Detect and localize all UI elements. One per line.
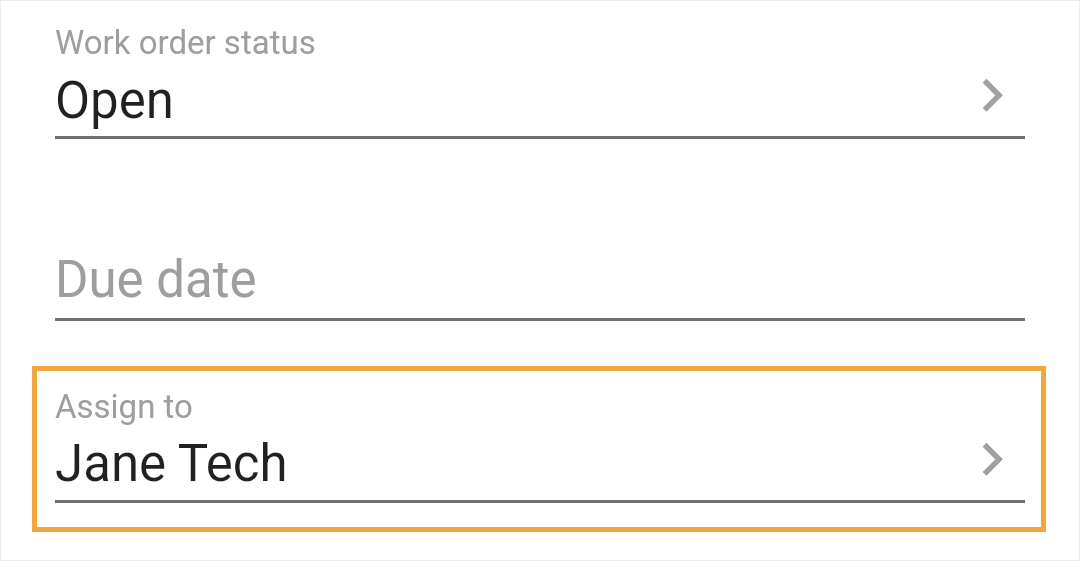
button[interactable]: Change assignee xyxy=(979,443,1019,483)
staticText: Open xyxy=(55,71,174,131)
staticText: Jane Tech xyxy=(55,434,288,494)
button[interactable] xyxy=(32,8,1046,150)
staticText: Work order status xyxy=(55,23,316,62)
staticText: Due date xyxy=(55,250,257,310)
staticText: Assign to xyxy=(55,387,193,426)
button[interactable] xyxy=(32,228,1046,332)
button[interactable] xyxy=(32,366,1046,532)
button[interactable]: Change work order status xyxy=(979,79,1019,119)
